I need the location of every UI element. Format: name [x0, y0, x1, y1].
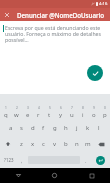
staticText: l [98, 124, 100, 132]
button[interactable]: 4 [33, 104, 44, 120]
button[interactable]: k [82, 120, 93, 136]
staticText: w [14, 111, 19, 119]
button[interactable]: d [27, 120, 38, 136]
staticText: d [31, 124, 35, 132]
button[interactable]: Shift [0, 136, 16, 152]
button[interactable]: Enviar denúncia [87, 65, 103, 81]
button[interactable]: 8 [77, 104, 88, 120]
button[interactable]: z [16, 136, 27, 152]
staticText: 1 [5, 106, 7, 110]
button[interactable]: Início [36, 168, 73, 183]
staticText: ?123 [4, 157, 14, 163]
staticText: 0 [104, 106, 106, 110]
button[interactable]: h [60, 120, 71, 136]
staticText: j [76, 124, 78, 132]
button[interactable]: 3 [22, 104, 33, 120]
button[interactable]: f [38, 120, 49, 136]
button[interactable]: x [27, 136, 38, 152]
staticText: 5 [49, 106, 51, 110]
button[interactable]: 9 [88, 104, 99, 120]
staticText: i [82, 111, 84, 119]
staticText: q [4, 111, 8, 119]
button[interactable]: l [93, 120, 104, 136]
button[interactable]: Enter [96, 156, 105, 165]
staticText: z [20, 140, 23, 148]
staticText: g [53, 124, 57, 132]
staticText: p [103, 111, 107, 119]
staticText: c [42, 140, 45, 148]
button[interactable]: ?123 [0, 152, 17, 168]
staticText: h [64, 124, 68, 132]
button[interactable]: v [49, 136, 60, 152]
staticText: 8 [82, 106, 84, 110]
staticText: 4 [38, 106, 40, 110]
staticText: m [85, 140, 91, 148]
button[interactable]: , [17, 152, 27, 168]
staticText: f [42, 124, 45, 132]
staticText: t [48, 111, 51, 119]
staticText: . [85, 157, 87, 164]
staticText: e [26, 111, 30, 119]
staticText: 9 [93, 106, 95, 110]
staticText: o [92, 111, 96, 119]
staticText: 3 [27, 106, 29, 110]
staticText: y [59, 111, 63, 119]
staticText: , [21, 157, 23, 164]
button[interactable]: 6 [55, 104, 66, 120]
button[interactable]: g [49, 120, 60, 136]
button[interactable]: 2 [11, 104, 22, 120]
button[interactable]: Recentes [73, 168, 110, 183]
staticText: v [53, 140, 57, 148]
staticText: k [86, 124, 90, 132]
button[interactable]: s [16, 120, 27, 136]
staticText: r [37, 111, 40, 119]
button[interactable]: b [60, 136, 71, 152]
staticText: Escreva por que está denunciando este us… [5, 24, 104, 43]
button[interactable]: 5 [44, 104, 55, 120]
button[interactable]: n [71, 136, 82, 152]
staticText: n [75, 140, 79, 148]
button[interactable]: 7 [66, 104, 77, 120]
button[interactable]: a [5, 120, 16, 136]
button[interactable]: m [82, 136, 93, 152]
staticText: 7 [71, 106, 73, 110]
button[interactable]: Fechar [0, 8, 13, 21]
button[interactable]: 1 [0, 104, 11, 120]
staticText: x [31, 140, 35, 148]
staticText: s [20, 124, 23, 132]
staticText: 2 [16, 106, 18, 110]
button[interactable]: Voltar [0, 168, 36, 183]
button[interactable]: Apagar [93, 136, 110, 152]
staticText: Denunciar @NomeDoUsuario [17, 11, 105, 19]
staticText: u [70, 111, 74, 119]
button[interactable]: c [38, 136, 49, 152]
staticText: 4:16 [99, 1, 108, 7]
staticText: a [9, 124, 13, 132]
button[interactable]: 0 [99, 104, 110, 120]
button[interactable]: j [71, 120, 82, 136]
staticText: 6 [60, 106, 62, 110]
staticText: b [64, 140, 68, 148]
